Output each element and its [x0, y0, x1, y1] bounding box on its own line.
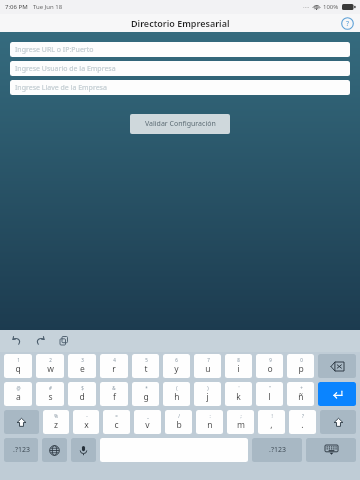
staticText: h [174, 391, 180, 403]
staticText: w [47, 363, 54, 375]
staticText: Ingrese URL o IP:Puerto [15, 45, 94, 55]
staticText: _ [147, 413, 149, 419]
staticText: k [236, 391, 241, 403]
staticText: 5 [145, 357, 148, 363]
button[interactable]: 1 [4, 354, 32, 378]
button[interactable]: 9 [256, 354, 283, 378]
staticText: = [115, 413, 118, 419]
button[interactable]: 2 [36, 354, 64, 378]
button[interactable]: Mayúsculas [320, 410, 356, 434]
staticText: o [267, 363, 273, 375]
staticText: + [300, 385, 303, 391]
button[interactable]: @ [4, 382, 32, 406]
button[interactable]: 8 [225, 354, 252, 378]
staticText: g [143, 391, 149, 403]
staticText: Tue Jun 18 [33, 3, 63, 11]
staticText: 1 [17, 357, 20, 363]
staticText: b [176, 419, 182, 431]
staticText: x [84, 419, 89, 431]
staticText: c [114, 419, 119, 431]
staticText: Ingrese Usuario de la Empresa [15, 64, 116, 74]
button[interactable]: # [36, 382, 64, 406]
staticText: 7:06 PM [5, 3, 28, 11]
button[interactable]: : [196, 410, 223, 434]
button[interactable]: * [132, 382, 159, 406]
staticText: f [113, 391, 116, 403]
button[interactable]: .?123 [4, 438, 38, 462]
button[interactable]: Validar Configuración [130, 114, 230, 134]
staticText: Validar Configuración [145, 119, 216, 129]
staticText: . [301, 419, 304, 431]
button[interactable]: Mayúsculas [4, 410, 39, 434]
staticText: ? [302, 413, 304, 419]
staticText: & [112, 385, 116, 391]
staticText: , [270, 419, 273, 431]
button[interactable]: / [165, 410, 192, 434]
button[interactable]: Ayuda [341, 17, 354, 30]
staticText: 6 [175, 357, 178, 363]
staticText: * [145, 385, 148, 391]
staticText: ···· [303, 3, 310, 11]
button[interactable]: 6 [163, 354, 190, 378]
staticText: t [144, 363, 148, 375]
button[interactable]: Ingrese Llave de la Empresa [10, 80, 350, 95]
button[interactable]: ) [194, 382, 221, 406]
button[interactable]: .?123 [252, 438, 302, 462]
staticText: Ingrese Llave de la Empresa [15, 83, 107, 93]
button[interactable]: & [100, 382, 128, 406]
staticText: y [174, 363, 179, 375]
button[interactable]: 3 [68, 354, 96, 378]
button[interactable]: 7 [194, 354, 221, 378]
staticText: n [207, 419, 213, 431]
button[interactable]: % [43, 410, 69, 434]
button[interactable]: = [103, 410, 130, 434]
button[interactable]: 0 [287, 354, 314, 378]
button[interactable]: " [256, 382, 283, 406]
button[interactable]: ! [258, 410, 285, 434]
staticText: i [237, 363, 240, 375]
staticText: ! [271, 413, 273, 419]
staticText: ) [207, 385, 209, 391]
staticText: q [15, 363, 21, 375]
button[interactable]: Dictado [71, 438, 96, 462]
staticText: % [54, 413, 58, 419]
staticText: 2 [49, 357, 52, 363]
button[interactable]: 4 [100, 354, 128, 378]
button[interactable]: ; [227, 410, 254, 434]
button[interactable]: Ocultar teclado [306, 438, 356, 462]
staticText: a [16, 391, 21, 403]
staticText: d [79, 391, 85, 403]
staticText: v [145, 419, 150, 431]
button[interactable]: _ [134, 410, 161, 434]
staticText: ñ [298, 391, 304, 403]
button[interactable]: ( [163, 382, 190, 406]
button[interactable]: Ingrese Usuario de la Empresa [10, 61, 350, 76]
staticText: s [48, 391, 53, 403]
staticText: 7 [207, 357, 210, 363]
staticText: r [112, 363, 116, 375]
button[interactable]: Pegar [56, 333, 72, 349]
staticText: p [298, 363, 304, 375]
staticText: ( [176, 385, 178, 391]
staticText: ; [240, 413, 242, 419]
button[interactable]: Intro [318, 382, 356, 406]
button[interactable]: Deshacer [8, 333, 24, 349]
button[interactable]: + [287, 382, 314, 406]
button[interactable]: 5 [132, 354, 159, 378]
staticText: .?123 [269, 445, 286, 455]
staticText: .?123 [13, 445, 30, 455]
button[interactable]: Rehacer [32, 333, 48, 349]
staticText: Directorio Empresarial [131, 17, 230, 29]
button[interactable]: - [73, 410, 99, 434]
button[interactable]: ' [225, 382, 252, 406]
staticText: 0 [300, 357, 303, 363]
button[interactable]: ? [289, 410, 316, 434]
staticText: 3 [81, 357, 84, 363]
staticText: 100% [323, 3, 339, 11]
button[interactable]: Ingrese URL o IP:Puerto [10, 42, 350, 57]
button[interactable]: Idioma [42, 438, 67, 462]
button[interactable]: Borrar [318, 354, 356, 378]
staticText: @ [16, 385, 21, 391]
button[interactable]: $ [68, 382, 96, 406]
